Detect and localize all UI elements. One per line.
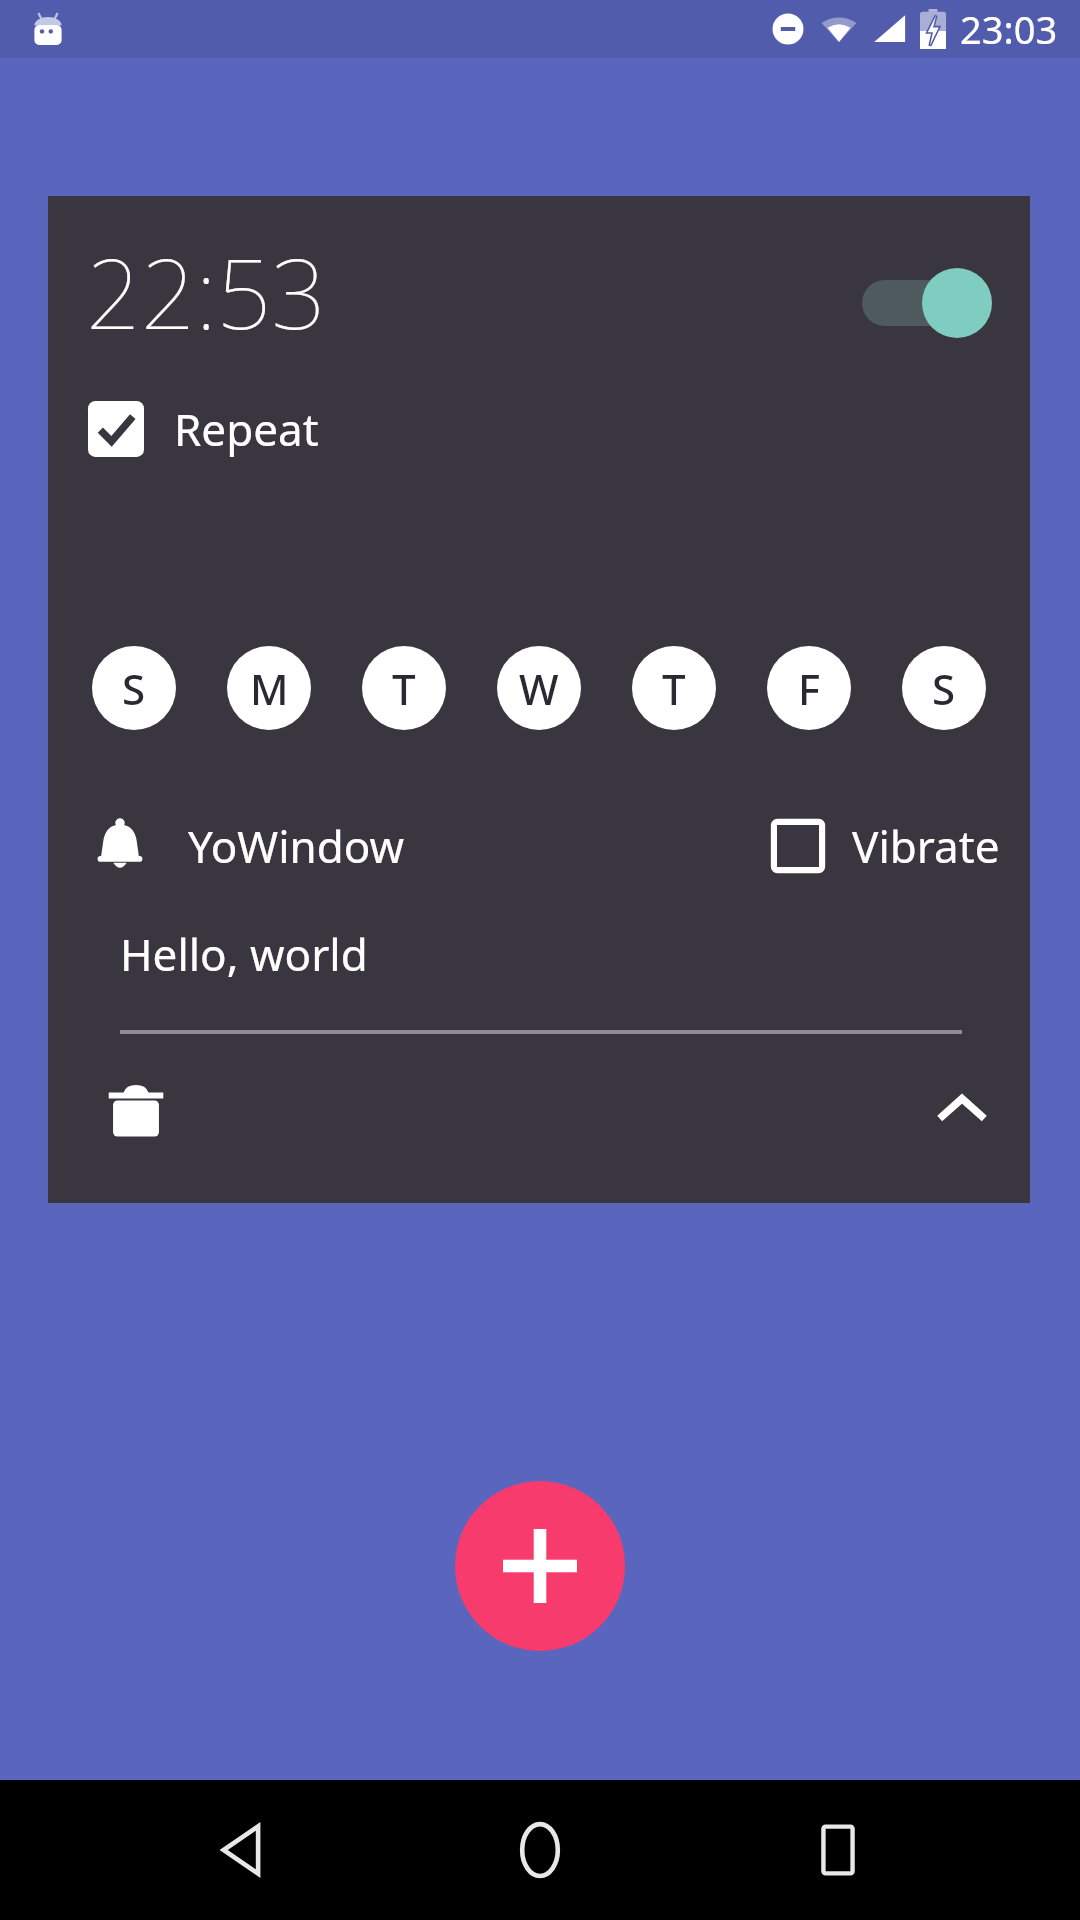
button[interactable]: F: [767, 646, 851, 730]
button[interactable]: Delete alarm: [92, 1067, 180, 1155]
staticText: T: [392, 660, 416, 717]
button[interactable]: T: [362, 646, 446, 730]
button[interactable]: Collapse: [918, 1067, 1006, 1155]
button[interactable]: Hello, world: [120, 914, 962, 1034]
button[interactable]: T: [632, 646, 716, 730]
button[interactable]: S: [902, 646, 986, 730]
staticText: Vibrate: [852, 816, 1000, 876]
button[interactable]: S: [92, 646, 176, 730]
button[interactable]: Vibrate: [770, 816, 1000, 876]
staticText: 22:53: [86, 226, 326, 357]
button[interactable]: YoWindow: [92, 816, 405, 876]
staticText: T: [662, 660, 686, 717]
button[interactable]: Alarm enabled toggle: [856, 266, 996, 340]
button[interactable]: Recent apps: [783, 1795, 893, 1905]
staticText: W: [519, 660, 559, 717]
button[interactable]: Add alarm: [455, 1481, 625, 1651]
staticText: YoWindow: [188, 816, 405, 876]
staticText: Repeat: [174, 399, 319, 459]
staticText: S: [932, 660, 956, 717]
button[interactable]: M: [227, 646, 311, 730]
staticText: S: [122, 660, 146, 717]
staticText: M: [250, 660, 289, 717]
staticText: Hello, world: [120, 924, 368, 984]
staticText: 23:03: [960, 3, 1058, 55]
button[interactable]: Back: [188, 1795, 298, 1905]
button[interactable]: Home: [485, 1795, 595, 1905]
staticText: F: [798, 660, 821, 717]
button[interactable]: W: [497, 646, 581, 730]
button[interactable]: Repeat: [88, 399, 319, 459]
